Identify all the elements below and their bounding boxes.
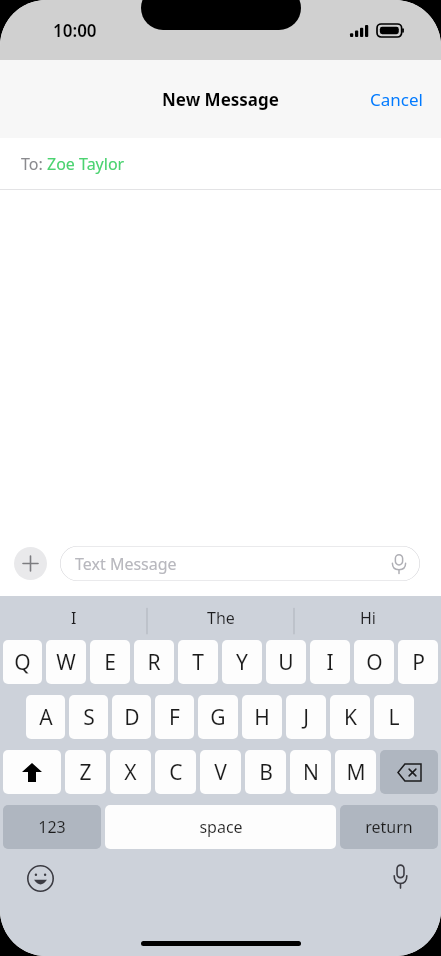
staticText: Text Message (75, 553, 177, 575)
button[interactable]: J (286, 695, 326, 739)
button[interactable]: H (242, 695, 282, 739)
button[interactable]: Y (222, 640, 262, 684)
staticText: Z (79, 758, 92, 787)
staticText: H (254, 703, 270, 732)
button[interactable]: Hi (294, 596, 441, 640)
button[interactable]: U (266, 640, 306, 684)
button[interactable]: W (46, 640, 86, 684)
button[interactable]: N (290, 750, 331, 794)
button[interactable]: T (178, 640, 218, 684)
staticText: W (56, 648, 76, 677)
button[interactable]: O (354, 640, 394, 684)
staticText: return (365, 816, 413, 838)
staticText: F (169, 703, 180, 732)
staticText: 123 (38, 816, 66, 838)
staticText: A (39, 703, 53, 732)
staticText: U (278, 648, 294, 677)
button[interactable]: C (155, 750, 196, 794)
staticText: J (303, 703, 309, 732)
staticText: O (366, 648, 383, 677)
button[interactable]: Z (65, 750, 106, 794)
staticText: space (199, 816, 243, 838)
button[interactable]: P (398, 640, 438, 684)
button[interactable]: Dictation (385, 861, 415, 891)
button[interactable]: Shift (3, 750, 61, 794)
button[interactable]: I (0, 596, 147, 640)
staticText: S (83, 703, 95, 732)
button[interactable]: return (340, 805, 438, 849)
button[interactable]: Q (3, 640, 42, 684)
button[interactable]: F (155, 695, 194, 739)
staticText: G (210, 703, 226, 732)
staticText: Hi (360, 607, 376, 629)
button[interactable]: S (69, 695, 108, 739)
staticText: R (147, 648, 161, 677)
staticText: V (214, 758, 227, 787)
button[interactable]: space (105, 805, 336, 849)
button[interactable]: X (110, 750, 151, 794)
staticText: Y (236, 648, 248, 677)
staticText: The (207, 607, 235, 629)
staticText: I (326, 648, 334, 677)
staticText: L (388, 703, 400, 732)
staticText: 10:00 (53, 19, 97, 42)
button[interactable]: L (374, 695, 414, 739)
staticText: T (192, 648, 204, 677)
button[interactable]: K (330, 695, 370, 739)
staticText: X (124, 758, 137, 787)
staticText: N (303, 758, 319, 787)
staticText: B (259, 758, 273, 787)
staticText: New Message (162, 88, 279, 111)
staticText: C (169, 758, 183, 787)
button[interactable]: Dictate (388, 553, 410, 575)
button[interactable]: Delete (380, 750, 438, 794)
button[interactable]: R (134, 640, 174, 684)
staticText: Zoe Taylor (47, 153, 125, 175)
button[interactable]: I (310, 640, 350, 684)
button[interactable]: Cancel (352, 76, 441, 123)
button[interactable]: V (200, 750, 241, 794)
staticText: D (124, 703, 140, 732)
staticText: E (104, 648, 116, 677)
button[interactable]: To: (0, 138, 441, 189)
staticText: P (412, 648, 425, 677)
button[interactable]: B (245, 750, 286, 794)
button[interactable]: Emoji (25, 863, 55, 893)
button[interactable]: A (26, 695, 65, 739)
button[interactable]: D (112, 695, 151, 739)
button[interactable]: E (90, 640, 130, 684)
staticText: Q (14, 648, 31, 677)
button[interactable]: 123 (3, 805, 101, 849)
staticText: Cancel (370, 88, 423, 111)
staticText: M (346, 758, 366, 787)
staticText: I (71, 607, 77, 629)
staticText: K (344, 703, 357, 732)
button[interactable]: Text Message (60, 546, 420, 581)
button[interactable]: G (198, 695, 238, 739)
staticText: To: (21, 153, 47, 175)
button[interactable]: The (147, 596, 294, 640)
button[interactable]: Add attachment (14, 547, 47, 580)
button[interactable]: M (335, 750, 376, 794)
